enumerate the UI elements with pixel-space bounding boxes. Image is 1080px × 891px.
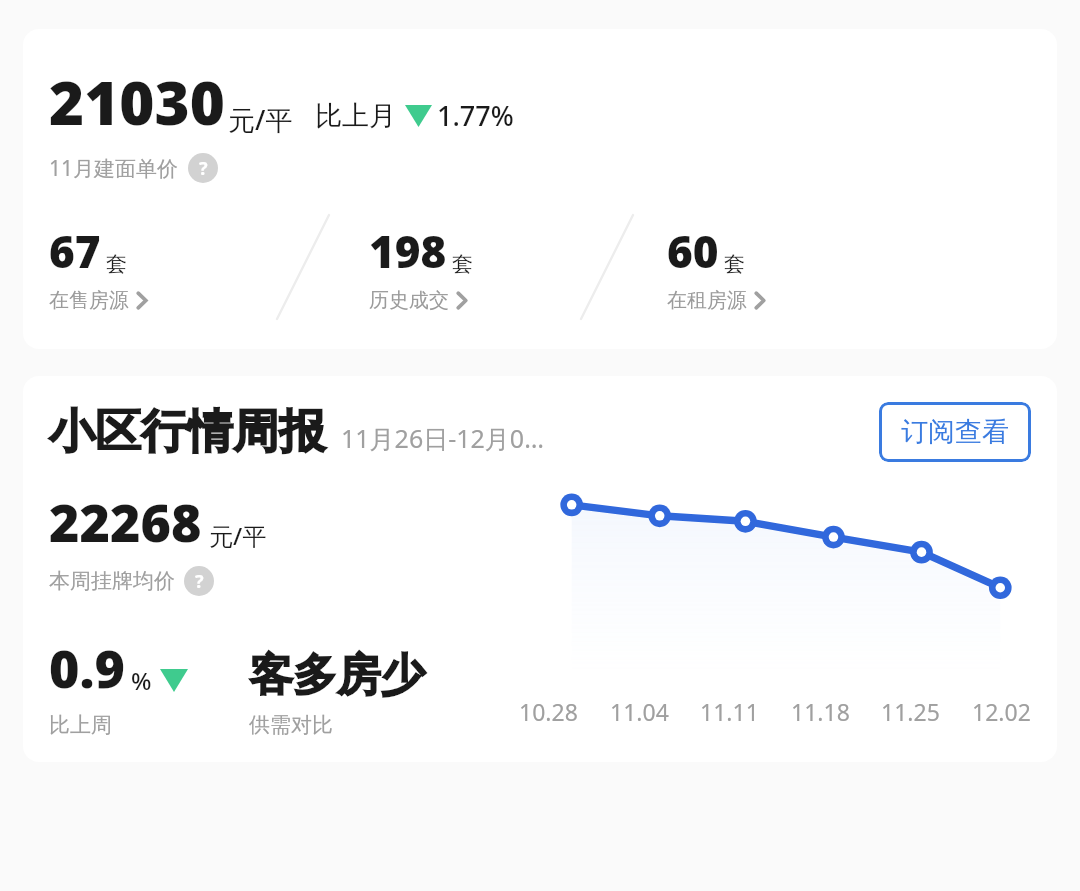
staticText: 0.9: [49, 632, 125, 703]
staticText: ?: [195, 569, 204, 594]
staticText: 11.18: [791, 696, 850, 727]
staticText: ?: [199, 156, 208, 181]
staticText: 本周挂牌均价: [49, 568, 175, 594]
button[interactable]: 60: [667, 221, 766, 313]
staticText: 1.77%: [437, 97, 514, 134]
staticText: 套: [724, 251, 745, 277]
staticText: 11月建面单价: [49, 154, 179, 183]
staticText: 历史成交: [369, 288, 449, 313]
staticText: 套: [106, 251, 127, 277]
staticText: 22268: [49, 486, 202, 557]
staticText: 比上月: [315, 99, 396, 133]
staticText: 元/平: [209, 519, 267, 552]
staticText: %: [131, 664, 152, 697]
staticText: 21030: [49, 61, 225, 143]
staticText: 10.28: [519, 696, 578, 727]
staticText: 比上周: [49, 712, 112, 738]
button[interactable]: 说明: [188, 153, 218, 183]
staticText: 198: [369, 221, 447, 281]
staticText: 60: [667, 221, 719, 281]
staticText: 11.25: [881, 696, 940, 727]
staticText: 11.04: [610, 696, 669, 727]
staticText: 67: [49, 221, 101, 281]
button[interactable]: 198: [369, 221, 581, 313]
staticText: 在租房源: [667, 288, 747, 313]
staticText: 套: [452, 251, 473, 277]
staticText: 供需对比: [249, 712, 333, 738]
staticText: 11月26日-12月0…: [341, 421, 879, 455]
staticText: 11.11: [700, 696, 759, 727]
button[interactable]: 67: [49, 221, 277, 313]
staticText: 订阅查看: [901, 415, 1009, 449]
staticText: 小区行情周报: [49, 403, 325, 461]
staticText: 在售房源: [49, 288, 129, 313]
button[interactable]: 说明: [184, 566, 214, 596]
staticText: 客多房少: [249, 648, 425, 703]
button[interactable]: 订阅查看: [879, 402, 1031, 462]
staticText: 12.02: [972, 696, 1031, 727]
staticText: 元/平: [228, 101, 293, 138]
